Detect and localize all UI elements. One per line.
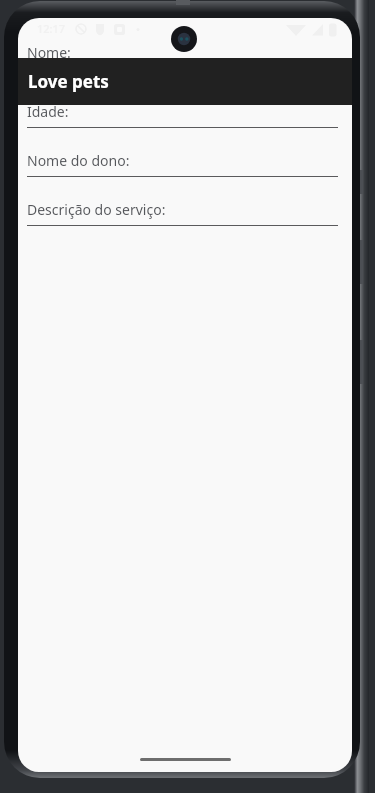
other: Front camera xyxy=(171,26,197,52)
button[interactable]: Nome do dono: xyxy=(27,145,338,194)
staticText: Descrição do serviço: xyxy=(27,200,166,219)
button[interactable]: Descrição do serviço: xyxy=(27,194,338,243)
staticText: Idade: xyxy=(27,102,69,121)
staticText: Love pets xyxy=(28,70,109,93)
button[interactable]: Nome: xyxy=(27,37,338,86)
staticText: Nome: xyxy=(27,43,71,62)
button[interactable]: Idade: xyxy=(27,96,338,145)
button[interactable]: Love pets xyxy=(18,58,352,105)
staticText: Nome do dono: xyxy=(27,151,130,170)
